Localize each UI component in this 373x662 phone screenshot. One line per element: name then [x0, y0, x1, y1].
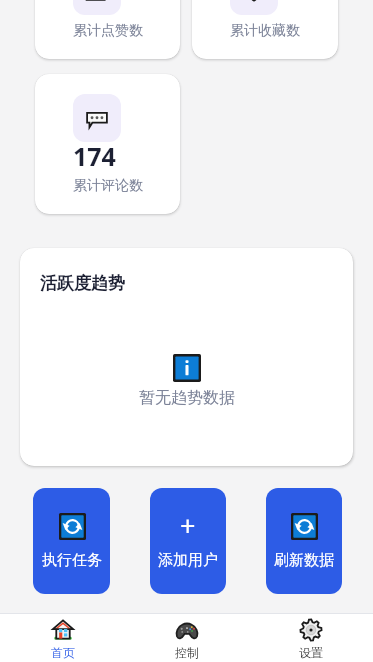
staticText: 控制	[175, 645, 199, 660]
staticText: 添加用户	[158, 551, 218, 570]
button[interactable]: 刷新数据	[266, 488, 342, 594]
button[interactable]: +	[150, 488, 226, 594]
button[interactable]: 累计收藏数	[192, 0, 338, 59]
staticText: 刷新数据	[274, 551, 334, 570]
staticText: 累计点赞数	[73, 22, 143, 40]
staticText: 暂无趋势数据	[139, 388, 235, 408]
staticText: 执行任务	[42, 551, 102, 570]
staticText: 174	[73, 139, 116, 173]
staticText: +	[180, 507, 196, 535]
button[interactable]: 执行任务	[33, 488, 110, 594]
staticText: 活跃度趋势	[40, 273, 125, 294]
button[interactable]: 174	[35, 74, 180, 214]
staticText: 累计评论数	[73, 177, 143, 195]
staticText: 设置	[299, 645, 323, 660]
button[interactable]: 累计点赞数	[35, 0, 180, 59]
staticText: 累计收藏数	[230, 22, 300, 40]
staticText: 首页	[51, 645, 75, 660]
button[interactable]: 首页	[0, 614, 125, 662]
button[interactable]: 控制	[125, 614, 249, 662]
button[interactable]: 设置	[249, 614, 373, 662]
